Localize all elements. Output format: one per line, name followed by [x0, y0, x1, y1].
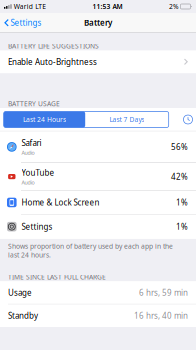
button[interactable]: Battery usage history — [183, 114, 196, 124]
staticText: Warid — [14, 2, 33, 11]
button[interactable]: Safari — [0, 131, 196, 162]
staticText: Last 7 Days — [109, 115, 144, 124]
staticText: 1% — [176, 197, 188, 208]
button[interactable]: Home & Lock Screen — [0, 191, 196, 214]
staticText: Home & Lock Screen — [22, 197, 100, 208]
staticText: TIME SINCE LAST FULL CHARGE — [8, 273, 106, 281]
staticText: 56% — [171, 142, 188, 152]
button[interactable]: YouTube — [0, 163, 196, 190]
staticText: 42% — [171, 171, 188, 182]
button[interactable]: Last 7 Days — [85, 111, 169, 127]
staticText: Shows proportion of battery used by each… — [8, 242, 173, 259]
staticText: Audio — [22, 149, 35, 156]
staticText: 16 hrs, 40 min — [134, 310, 188, 321]
staticText: 6 hrs, 59 min — [139, 287, 188, 298]
staticText: Battery — [84, 17, 112, 28]
staticText: Safari — [22, 138, 42, 148]
staticText: Standby — [8, 310, 38, 321]
staticText: Enable Auto-Brightness — [8, 56, 97, 67]
staticText: 11:53 AM — [93, 2, 123, 11]
button[interactable]: Settings — [0, 13, 46, 32]
staticText: Audio — [22, 179, 35, 186]
staticText: 1% — [176, 221, 188, 232]
staticText: LTE — [35, 2, 46, 11]
staticText: YouTube — [22, 167, 55, 178]
staticText: Usage — [8, 287, 32, 298]
staticText: Settings — [22, 221, 53, 232]
staticText: 2% — [169, 2, 179, 11]
staticText: BATTERY USAGE — [8, 99, 60, 108]
button[interactable]: Last 24 Hours — [4, 111, 85, 127]
button[interactable]: Enable Auto-Brightness — [0, 50, 196, 73]
staticText: Settings — [10, 17, 41, 28]
staticText: Last 24 Hours — [23, 115, 66, 124]
button[interactable]: Settings — [0, 215, 196, 239]
staticText: BATTERY LIFE SUGGESTIONS — [8, 41, 99, 50]
